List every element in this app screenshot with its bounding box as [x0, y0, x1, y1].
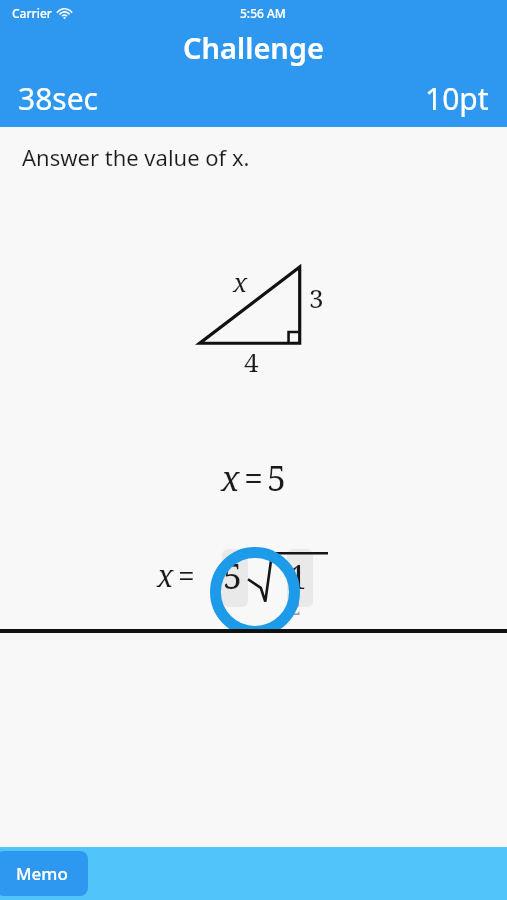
staticText: Carrier: [12, 5, 52, 21]
staticText: Answer the value of x.: [22, 142, 250, 172]
staticText: 4: [244, 344, 259, 379]
staticText: x: [157, 555, 174, 596]
staticText: x: [221, 455, 240, 501]
staticText: Memo: [16, 862, 68, 885]
staticText: 2: [290, 595, 301, 621]
staticText: =: [178, 555, 195, 596]
staticText: 10pt: [425, 78, 489, 119]
button[interactable]: Memo: [0, 851, 88, 896]
staticText: 3: [309, 280, 324, 315]
staticText: 5: [223, 553, 243, 599]
staticText: 5:56 AM: [240, 5, 286, 21]
staticText: 1: [289, 555, 307, 599]
staticText: 38sec: [18, 78, 99, 119]
other: Wi-Fi signal: [57, 7, 72, 19]
staticText: Challenge: [183, 28, 324, 67]
staticText: 5: [267, 455, 287, 501]
staticText: =: [244, 455, 264, 501]
staticText: x: [233, 264, 248, 299]
other: Selected answer token: [210, 547, 300, 637]
